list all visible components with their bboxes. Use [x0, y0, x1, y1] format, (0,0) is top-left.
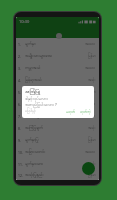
staticText: ကမ္ဘာအသံ	[25, 65, 41, 71]
staticText: မြန်မာ့အသံ	[25, 77, 42, 83]
staticText: 6.	[18, 102, 21, 107]
button[interactable]: 6.	[16, 98, 99, 110]
staticText: 4.	[18, 78, 21, 83]
staticText: 10.	[18, 150, 23, 155]
button[interactable]: 4.	[16, 74, 99, 86]
staticText: အတည်ပြုပါသလား ?	[25, 102, 57, 109]
staticText: 5.	[18, 90, 21, 95]
staticText: 11.	[18, 162, 23, 167]
button[interactable]: 1.	[16, 38, 99, 50]
staticText: ဒါနှင့်လုပ်မလား	[25, 96, 48, 102]
staticText: 9.	[18, 138, 21, 143]
button[interactable]: 5.	[16, 86, 99, 98]
staticText: အလုပ်သမား	[25, 101, 44, 107]
button[interactable]: 11.	[16, 158, 99, 170]
staticText: 8.	[18, 126, 21, 131]
staticText: အခလေ	[85, 114, 96, 119]
staticText: အမျိုးသားများအေး	[25, 53, 52, 59]
button[interactable]: 3.	[16, 62, 99, 74]
staticText: 3.	[18, 66, 21, 71]
button[interactable]: 8.	[16, 122, 99, 134]
staticText: အသုံး	[88, 126, 96, 131]
staticText: မျက်နှားသား	[25, 161, 44, 167]
staticText: 7.	[18, 114, 21, 119]
staticText: အသုံး	[88, 78, 96, 83]
staticText: အသုံး	[88, 162, 96, 167]
button[interactable]: ဟုတ်ကဲ့	[79, 109, 92, 114]
button[interactable]: မဟုတ်	[65, 109, 77, 114]
button[interactable]: 10.	[16, 146, 99, 158]
button[interactable]: 9.	[16, 134, 99, 146]
staticText: အမျိုးသားများ	[25, 89, 46, 95]
staticText: အကြံပြု	[25, 87, 41, 96]
staticText: 12.	[18, 173, 23, 178]
button[interactable]: 2.	[16, 50, 99, 62]
staticText: အခလေ	[85, 102, 96, 107]
button[interactable]: Add	[82, 162, 95, 175]
staticText: မြန်မာ	[88, 173, 96, 178]
staticText: အခလေ	[85, 150, 96, 155]
staticText: မြန်မာ	[88, 54, 96, 59]
staticText: အသုံးပြုနည်း	[25, 172, 44, 178]
staticText: မြန်မာ	[88, 90, 96, 95]
staticText: အခလေ	[85, 42, 96, 47]
staticText: မျက်နှာပြု	[25, 137, 39, 143]
staticText: မြန်မာ	[88, 138, 96, 143]
staticText: သတင်းများ	[25, 113, 42, 119]
staticText: အကြံပြုချက်	[25, 125, 44, 131]
staticText: 1.	[18, 42, 21, 47]
button[interactable]: 7.	[16, 110, 99, 122]
button[interactable]: 12.	[16, 170, 99, 180]
staticText: မျက်နှာ	[25, 41, 36, 47]
staticText: အခလေ	[85, 66, 96, 71]
staticText: 2.	[18, 54, 21, 59]
staticText: 10:30	[19, 19, 30, 24]
staticText: မပြပါနှင့်	[25, 109, 36, 114]
staticText: အခြားသတင်း	[25, 149, 46, 155]
